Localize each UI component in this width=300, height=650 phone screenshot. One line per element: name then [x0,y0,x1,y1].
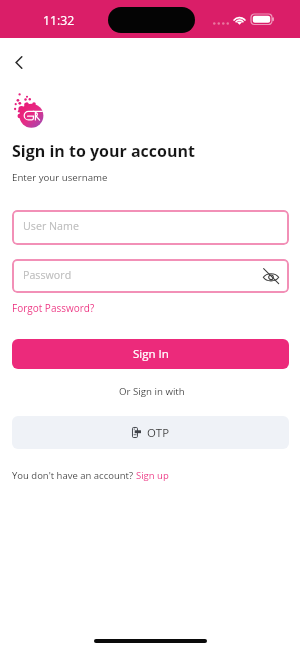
staticText: User Name [23,219,79,234]
button[interactable]: Show password [258,263,284,289]
staticText: You don't have an account? [12,469,136,482]
button[interactable]: Forgot Password? [12,301,95,315]
button[interactable]: Sign In [12,339,289,369]
staticText: Password [23,268,72,283]
button[interactable]: User Name [12,210,289,245]
button[interactable]: Back [5,48,33,76]
staticText: Sign In [133,346,169,362]
button[interactable]: Sign up [136,469,169,482]
staticText: Enter your username [12,171,108,184]
staticText: Or Sign in with [119,385,185,398]
staticText: 11:32 [43,12,75,29]
staticText: OTP [147,425,169,441]
staticText: Sign in to your account [12,140,195,162]
button[interactable]: OTP [12,416,289,449]
button[interactable]: Password [12,259,289,293]
